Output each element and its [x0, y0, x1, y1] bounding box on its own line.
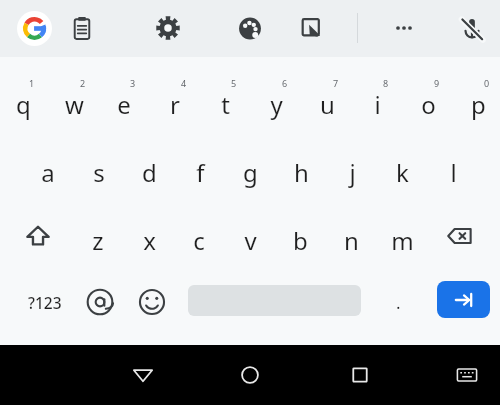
- staticText: h: [294, 156, 309, 189]
- staticText: e: [117, 88, 131, 121]
- button[interactable]: Recents: [336, 351, 384, 399]
- button[interactable]: 8: [352, 74, 402, 126]
- staticText: m: [391, 224, 414, 257]
- staticText: 0: [484, 77, 490, 89]
- button[interactable]: Google: [17, 11, 52, 46]
- button[interactable]: s: [74, 142, 124, 194]
- button[interactable]: 4: [150, 74, 200, 126]
- button[interactable]: f: [175, 142, 225, 194]
- button[interactable]: Clipboard: [61, 7, 103, 49]
- button[interactable]: Emoji: [130, 280, 174, 324]
- staticText: 9: [434, 77, 440, 89]
- button[interactable]: g: [225, 142, 275, 194]
- button[interactable]: Text editing: [290, 7, 332, 49]
- staticText: k: [396, 156, 409, 189]
- button[interactable]: 2: [49, 74, 99, 126]
- staticText: d: [142, 156, 157, 189]
- staticText: f: [196, 156, 205, 189]
- staticText: .: [396, 291, 401, 314]
- button[interactable]: 6: [251, 74, 301, 126]
- staticText: u: [320, 88, 335, 121]
- button[interactable]: j: [327, 142, 377, 194]
- button[interactable]: v: [225, 210, 275, 262]
- button[interactable]: Shift: [11, 213, 65, 259]
- button[interactable]: d: [124, 142, 174, 194]
- staticText: t: [221, 88, 230, 121]
- staticText: 5: [231, 77, 237, 89]
- staticText: 6: [282, 77, 288, 89]
- staticText: 7: [333, 77, 339, 89]
- button[interactable]: Hide keyboard: [443, 351, 491, 399]
- staticText: n: [344, 224, 359, 257]
- button[interactable]: a: [23, 142, 73, 194]
- staticText: r: [170, 88, 180, 121]
- button[interactable]: More options: [383, 7, 425, 49]
- button[interactable]: l: [428, 142, 478, 194]
- button[interactable]: 9: [403, 74, 453, 126]
- button[interactable]: Enter: [437, 281, 490, 318]
- staticText: b: [293, 224, 308, 257]
- staticText: 3: [130, 77, 136, 89]
- staticText: 4: [181, 77, 187, 89]
- button[interactable]: 7: [302, 74, 352, 126]
- staticText: o: [421, 88, 436, 121]
- button[interactable]: 3: [99, 74, 149, 126]
- staticText: x: [143, 224, 156, 257]
- staticText: 2: [80, 77, 86, 89]
- staticText: z: [92, 224, 104, 257]
- button[interactable]: 1: [0, 74, 48, 126]
- staticText: j: [349, 156, 356, 189]
- button[interactable]: 5: [200, 74, 250, 126]
- button[interactable]: At sign: [78, 280, 122, 324]
- staticText: g: [243, 156, 258, 189]
- button[interactable]: Back: [119, 351, 167, 399]
- staticText: 1: [29, 77, 35, 89]
- button[interactable]: k: [377, 142, 427, 194]
- button[interactable]: Home: [226, 351, 274, 399]
- button[interactable]: ?123: [15, 279, 75, 325]
- staticText: c: [193, 224, 205, 257]
- button[interactable]: m: [377, 210, 427, 262]
- staticText: l: [450, 156, 457, 189]
- button[interactable]: 0: [453, 74, 500, 126]
- button[interactable]: h: [276, 142, 326, 194]
- button[interactable]: c: [174, 210, 224, 262]
- staticText: s: [93, 156, 105, 189]
- staticText: v: [244, 224, 257, 257]
- staticText: p: [471, 88, 486, 121]
- staticText: w: [65, 88, 84, 121]
- button[interactable]: b: [275, 210, 325, 262]
- staticText: y: [270, 88, 283, 121]
- button[interactable]: n: [326, 210, 376, 262]
- button[interactable]: Backspace: [433, 213, 487, 259]
- button[interactable]: Voice input off: [451, 7, 493, 49]
- button[interactable]: Themes: [229, 7, 271, 49]
- staticText: i: [374, 88, 381, 121]
- button[interactable]: x: [124, 210, 174, 262]
- staticText: ?123: [28, 292, 62, 313]
- button[interactable]: .: [378, 280, 418, 324]
- staticText: 8: [383, 77, 389, 89]
- staticText: q: [16, 88, 31, 121]
- button[interactable]: z: [73, 210, 123, 262]
- staticText: a: [41, 156, 55, 189]
- button[interactable]: Settings: [147, 7, 189, 49]
